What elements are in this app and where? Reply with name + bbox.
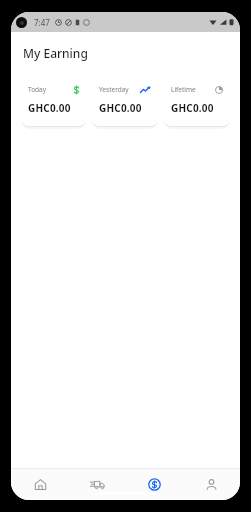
staticText: Today — [28, 85, 47, 94]
staticText: Lifetime — [171, 85, 196, 94]
button[interactable]: Deliveries — [69, 469, 126, 500]
staticText: GHC0.00 — [171, 101, 214, 115]
staticText: GHC0.00 — [28, 101, 71, 115]
button[interactable]: Today — [21, 75, 86, 126]
button[interactable]: Home — [11, 469, 69, 500]
staticText: GHC0.00 — [99, 101, 142, 115]
staticText: 7:47 — [34, 17, 50, 28]
button[interactable]: Yesterday — [92, 75, 158, 126]
staticText: My Earning — [23, 45, 88, 61]
button[interactable]: Lifetime — [164, 75, 230, 126]
button[interactable]: Profile — [183, 469, 240, 500]
button[interactable]: Earnings — [126, 469, 183, 500]
staticText: Yesterday — [99, 85, 129, 94]
